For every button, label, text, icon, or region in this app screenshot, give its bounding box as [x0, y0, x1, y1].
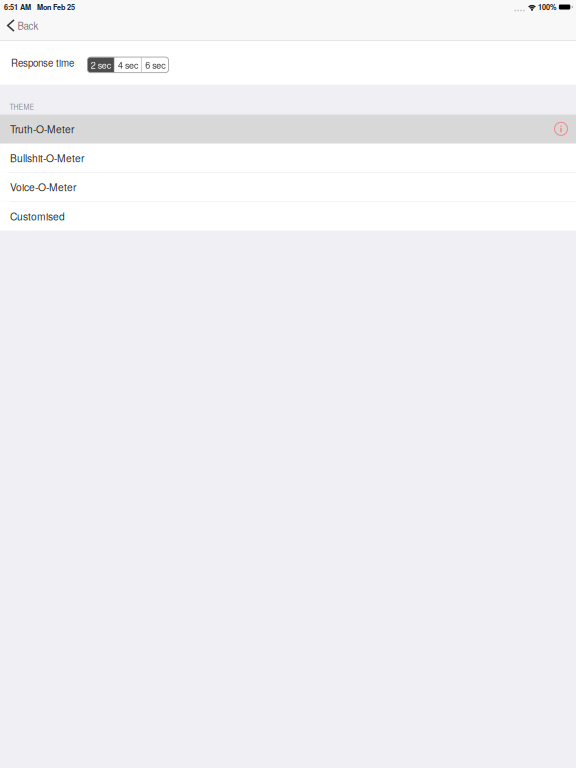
button[interactable]: 6 sec	[142, 57, 169, 72]
staticText: Response time	[11, 56, 74, 69]
staticText: Voice-O-Meter	[10, 179, 76, 194]
staticText: 6 sec	[145, 58, 165, 71]
staticText: Truth-O-Meter	[10, 121, 74, 136]
staticText: Back	[17, 18, 38, 32]
button[interactable]: 2 sec	[87, 57, 114, 72]
button[interactable]: 4 sec	[115, 57, 141, 72]
staticText: 2 sec	[91, 58, 111, 71]
button[interactable]: More info about Truth-O-Meter	[554, 122, 568, 136]
staticText: 100%	[538, 2, 557, 12]
staticText: THEME	[10, 102, 35, 112]
button[interactable]: Voice-O-Meter	[0, 173, 576, 202]
staticText: 4 sec	[118, 58, 138, 71]
button[interactable]: Bullshit-O-Meter	[0, 144, 576, 173]
button[interactable]: Truth-O-Meter	[0, 115, 576, 144]
button[interactable]: Customised	[0, 202, 576, 231]
staticText: Mon Feb 25	[37, 2, 75, 12]
button[interactable]: Back	[0, 14, 46, 40]
staticText: Customised	[10, 209, 65, 223]
staticText: 6:51 AM	[4, 2, 31, 12]
staticText: Bullshit-O-Meter	[10, 150, 84, 165]
